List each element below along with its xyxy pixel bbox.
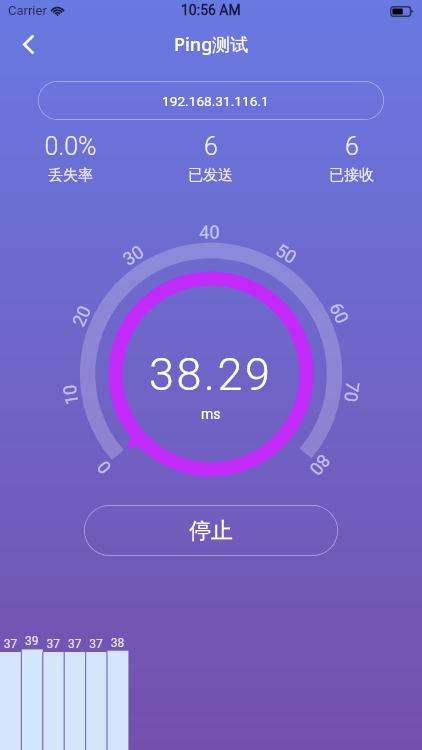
button[interactable]: Back	[6, 22, 50, 66]
staticText: ms	[201, 406, 221, 422]
staticText: 6	[345, 132, 359, 161]
staticText: 6	[204, 132, 218, 161]
button[interactable]: 192.168.31.116.1	[38, 81, 384, 120]
staticText: 停止	[189, 517, 233, 545]
button[interactable]: 停止	[84, 505, 338, 556]
staticText: 已发送	[188, 166, 233, 185]
staticText: 丢失率	[48, 166, 93, 185]
staticText: 38.29	[149, 348, 273, 401]
staticText: 0.0%	[44, 132, 97, 161]
staticText: Ping测试	[174, 32, 249, 57]
staticText: Carrier	[8, 3, 47, 18]
staticText: 已接收	[329, 166, 374, 185]
staticText: 192.168.31.116.1	[162, 93, 269, 109]
staticText: 10:56 AM	[181, 2, 241, 18]
